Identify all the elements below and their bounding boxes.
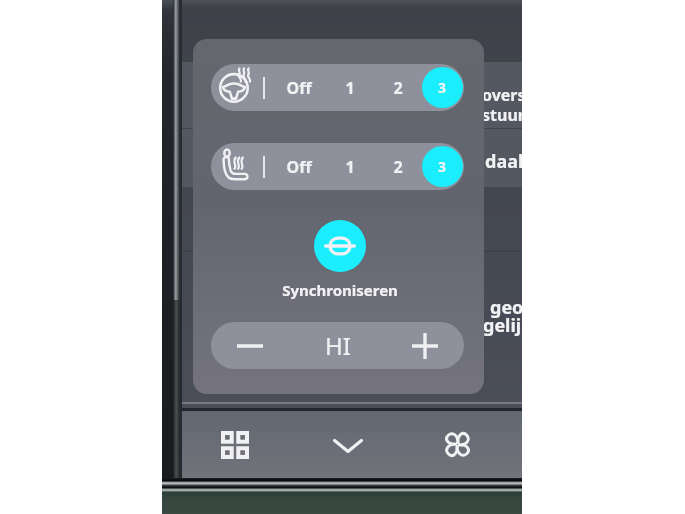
button[interactable]: Seat heater level xyxy=(211,143,464,190)
button[interactable]: Steering wheel heater level xyxy=(211,64,464,111)
staticText: 3 xyxy=(438,78,447,97)
button[interactable]: Hoger xyxy=(386,322,464,369)
staticText: stuurwi xyxy=(482,104,522,126)
button[interactable]: Synchroniseren xyxy=(314,220,366,272)
staticText: 2 xyxy=(376,77,420,99)
staticText: Off xyxy=(277,156,321,178)
staticText: daale xyxy=(485,149,522,174)
button[interactable]: Klimaat xyxy=(409,411,522,478)
button[interactable]: Apps xyxy=(182,411,296,478)
staticText: Synchroniseren xyxy=(210,280,470,300)
staticText: HI xyxy=(325,329,351,362)
button[interactable]: Lager xyxy=(211,322,289,369)
staticText: 1 xyxy=(328,77,372,99)
staticText: gelijks xyxy=(483,313,522,338)
button[interactable]: Sluiten xyxy=(296,411,409,478)
staticText: Off xyxy=(277,77,321,99)
staticText: 3 xyxy=(438,157,447,176)
staticText: 2 xyxy=(376,156,420,178)
staticText: 1 xyxy=(328,156,372,178)
staticText: geopen xyxy=(490,295,522,320)
staticText: oversch xyxy=(482,84,522,106)
